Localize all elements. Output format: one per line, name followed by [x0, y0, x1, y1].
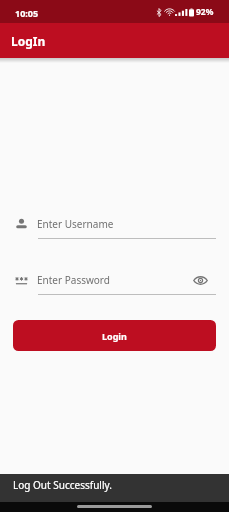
staticText: Enter Password: [37, 273, 192, 287]
staticText: 92%: [196, 6, 214, 18]
button[interactable]: Login: [13, 320, 216, 351]
staticText: LogIn: [11, 33, 46, 49]
button[interactable]: Show password: [192, 274, 209, 286]
staticText: Log Out Successfully.: [13, 478, 112, 492]
staticText: 10:05: [15, 7, 39, 19]
staticText: Enter Username: [37, 217, 229, 231]
staticText: Login: [102, 330, 127, 342]
